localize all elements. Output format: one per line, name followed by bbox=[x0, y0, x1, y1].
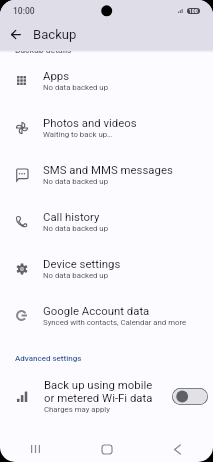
staticText: Google Account data bbox=[43, 304, 150, 317]
button[interactable]: Home bbox=[71, 436, 142, 462]
staticText: Device settings bbox=[43, 257, 121, 270]
staticText: Advanced settings bbox=[15, 354, 82, 363]
staticText: Call history bbox=[43, 210, 100, 223]
staticText: Synced with contacts, Calendar and more bbox=[43, 318, 187, 327]
staticText: Backup details bbox=[15, 51, 72, 53]
staticText: Waiting to back up… bbox=[43, 130, 113, 139]
staticText: No data backed up bbox=[43, 271, 109, 280]
button[interactable]: Apps bbox=[0, 57, 213, 104]
button[interactable]: Back bbox=[4, 22, 28, 46]
staticText: No data backed up bbox=[43, 83, 109, 92]
staticText: 100 bbox=[189, 8, 198, 14]
button[interactable]: Call history bbox=[0, 198, 213, 245]
button[interactable]: Google Account data bbox=[0, 292, 213, 339]
button[interactable]: SMS and MMS messages bbox=[0, 151, 213, 198]
button[interactable]: Back up using mobile or metered Wi-Fi da… bbox=[0, 374, 213, 418]
staticText: Back up using mobile or metered Wi-Fi da… bbox=[44, 378, 153, 404]
staticText: SMS and MMS messages bbox=[43, 163, 173, 176]
button[interactable]: Photos and videos bbox=[0, 104, 213, 151]
button[interactable]: Device settings bbox=[0, 245, 213, 292]
staticText: No data backed up bbox=[43, 177, 109, 186]
staticText: 10:00 bbox=[13, 6, 35, 16]
button[interactable]: Recents bbox=[0, 436, 71, 462]
staticText: Apps bbox=[43, 69, 70, 82]
staticText: Charges may apply bbox=[44, 405, 110, 414]
button[interactable]: Back bbox=[142, 436, 213, 462]
staticText: Backup bbox=[33, 27, 77, 42]
other: Back up using mobile data toggle bbox=[172, 388, 208, 405]
staticText: Photos and videos bbox=[43, 116, 137, 129]
staticText: No data backed up bbox=[43, 224, 109, 233]
